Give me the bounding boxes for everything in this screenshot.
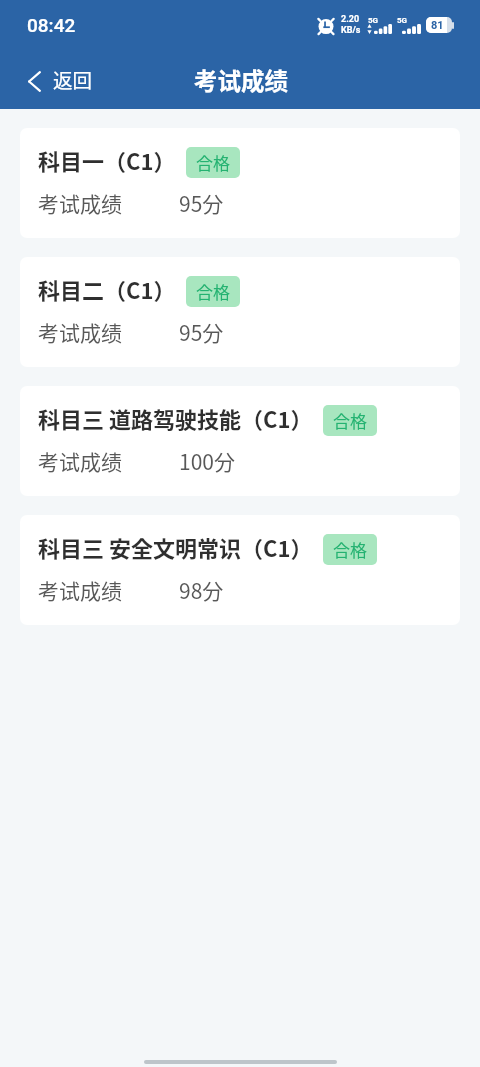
staticText: 2.20 [341, 14, 360, 25]
staticText: 返回 [53, 65, 93, 93]
staticText: 科目一（C1） [38, 144, 176, 176]
button[interactable]: 科目一（C1） [20, 128, 460, 238]
staticText: 合格 [196, 150, 230, 175]
staticText: 5G [368, 16, 379, 25]
staticText: KB/s [341, 25, 361, 36]
staticText: 08:42 [27, 14, 76, 36]
staticText: 考试成绩 [194, 63, 288, 97]
staticText: 考试成绩 [38, 188, 122, 218]
staticText: 95分 [179, 317, 224, 347]
button[interactable]: 科目二（C1） [20, 257, 460, 367]
staticText: 98分 [179, 575, 224, 605]
staticText: 合格 [333, 408, 367, 433]
staticText: 合格 [196, 279, 230, 304]
staticText: 科目二（C1） [38, 273, 176, 305]
button[interactable]: 返回 [0, 55, 109, 103]
staticText: 考试成绩 [38, 446, 122, 476]
staticText: 100分 [179, 446, 235, 476]
staticText: 95分 [179, 188, 224, 218]
staticText: 考试成绩 [38, 317, 122, 347]
staticText: 科目三 道路驾驶技能（C1） [38, 402, 313, 434]
staticText: 5G [397, 16, 408, 25]
button[interactable]: 科目三 安全文明常识（C1） [20, 515, 460, 625]
staticText: 81 [431, 19, 444, 32]
staticText: 合格 [333, 537, 367, 562]
staticText: 考试成绩 [38, 575, 122, 605]
button[interactable]: 科目三 道路驾驶技能（C1） [20, 386, 460, 496]
staticText: 科目三 安全文明常识（C1） [38, 531, 313, 563]
